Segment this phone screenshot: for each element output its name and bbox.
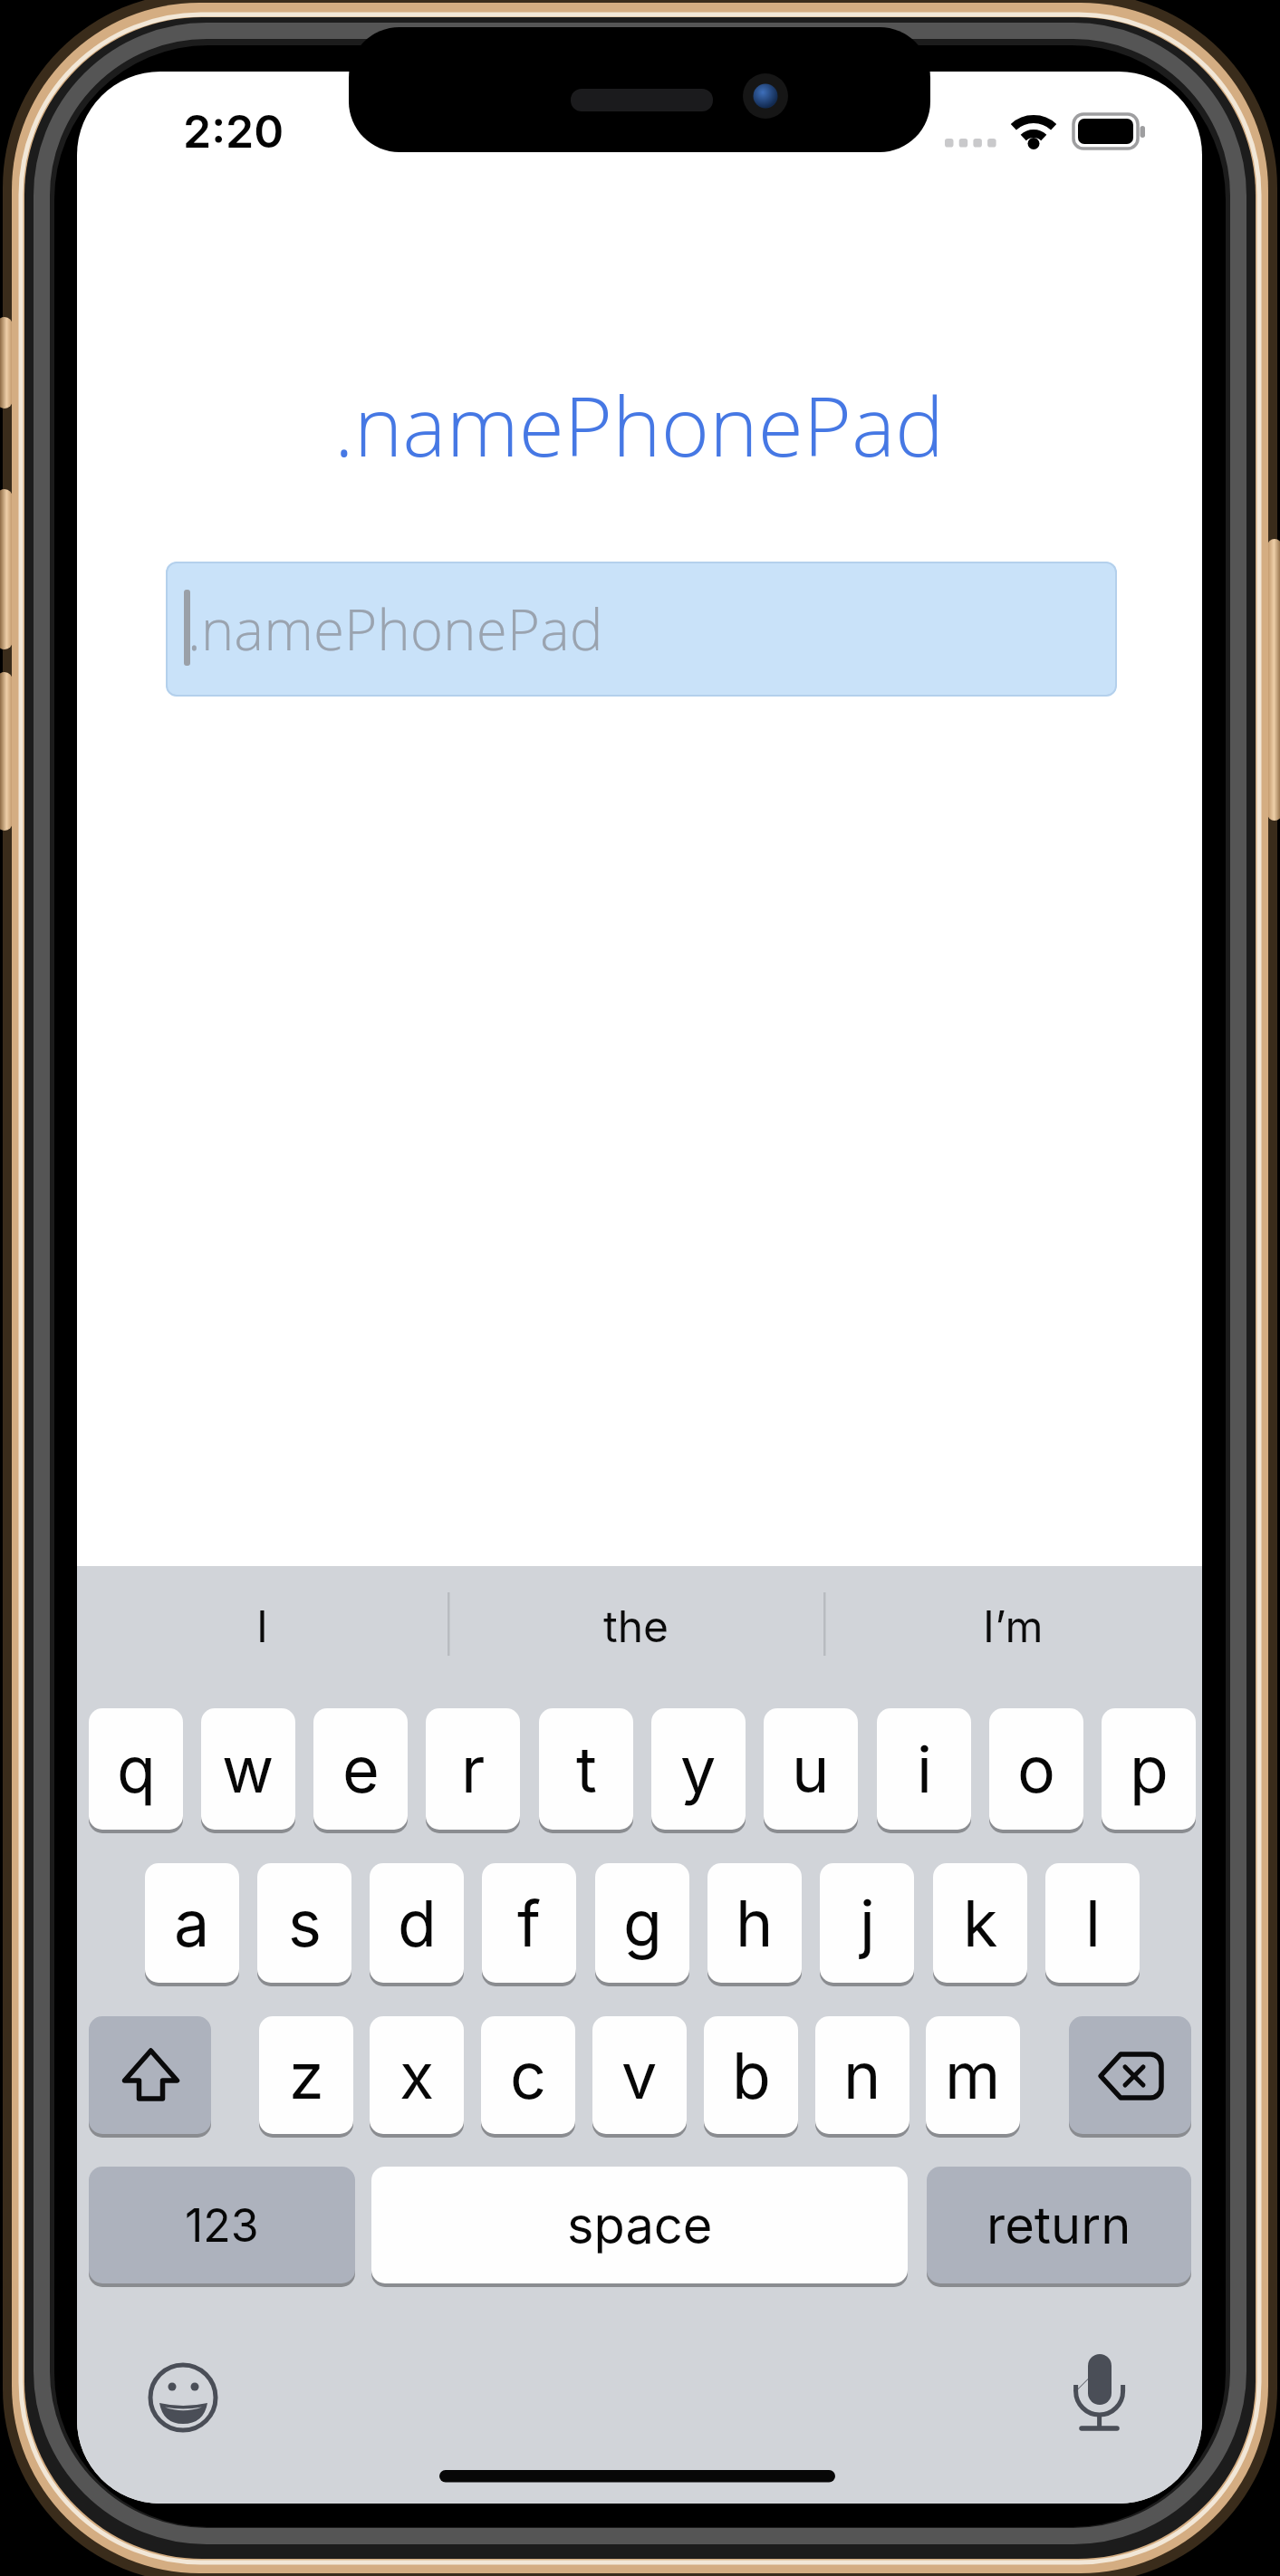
button[interactable]: t (539, 1708, 633, 1830)
staticText: 2:20 (183, 104, 284, 159)
staticText: w (222, 1731, 274, 1808)
staticText: h (736, 1885, 774, 1962)
button[interactable]: return (927, 2167, 1191, 2283)
staticText: .namePhonePad (188, 591, 603, 667)
staticText: p (1130, 1731, 1169, 1808)
button[interactable]: d (370, 1863, 464, 1983)
button[interactable] (145, 2357, 226, 2438)
staticText: a (174, 1885, 210, 1962)
button[interactable]: I’m (824, 1569, 1202, 1683)
staticText: y (680, 1731, 717, 1808)
staticText: return (986, 2195, 1131, 2256)
staticText: j (860, 1885, 875, 1962)
staticText: x (399, 2037, 435, 2114)
staticText: k (963, 1885, 998, 1962)
button[interactable]: v (592, 2016, 687, 2134)
staticText: v (621, 2037, 658, 2114)
staticText: q (117, 1731, 156, 1808)
button[interactable]: i (877, 1708, 971, 1830)
staticText: i (917, 1731, 932, 1808)
staticText: o (1017, 1731, 1055, 1808)
button[interactable]: p (1102, 1708, 1196, 1830)
button[interactable]: m (926, 2016, 1020, 2134)
staticText: the (603, 1600, 669, 1652)
button[interactable]: b (704, 2016, 798, 2134)
button[interactable]: n (815, 2016, 909, 2134)
staticText: 123 (185, 2198, 259, 2253)
button[interactable]: 123 (89, 2167, 355, 2283)
staticText: f (517, 1885, 541, 1962)
button[interactable] (89, 2016, 211, 2134)
button[interactable]: e (313, 1708, 408, 1830)
button[interactable]: space (371, 2167, 908, 2283)
staticText: d (398, 1885, 437, 1962)
staticText: space (567, 2195, 713, 2256)
button[interactable]: o (989, 1708, 1083, 1830)
button[interactable]: u (764, 1708, 858, 1830)
staticText: m (945, 2037, 1001, 2114)
button[interactable]: c (481, 2016, 575, 2134)
staticText: r (461, 1731, 486, 1808)
staticText: I (256, 1600, 268, 1652)
button[interactable]: I (77, 1569, 448, 1683)
button[interactable] (1069, 2016, 1191, 2134)
button[interactable]: q (89, 1708, 183, 1830)
staticText: c (510, 2037, 546, 2114)
button[interactable]: f (482, 1863, 576, 1983)
button[interactable]: g (595, 1863, 689, 1983)
button[interactable]: k (933, 1863, 1027, 1983)
button[interactable]: .namePhonePad (166, 562, 1117, 697)
button[interactable]: a (145, 1863, 239, 1983)
button[interactable]: z (259, 2016, 353, 2134)
staticText: s (288, 1885, 322, 1962)
button[interactable]: x (370, 2016, 464, 2134)
staticText: t (576, 1731, 597, 1808)
staticText: l (1085, 1885, 1101, 1962)
button[interactable] (1058, 2351, 1141, 2438)
staticText: .namePhonePad (334, 369, 945, 481)
staticText: z (289, 2037, 324, 2114)
staticText: I’m (983, 1600, 1044, 1652)
button[interactable]: j (820, 1863, 914, 1983)
button[interactable]: l (1045, 1863, 1140, 1983)
staticText: e (342, 1731, 380, 1808)
staticText: n (843, 2037, 881, 2114)
button[interactable]: h (707, 1863, 802, 1983)
button[interactable]: s (257, 1863, 351, 1983)
button[interactable]: y (651, 1708, 746, 1830)
staticText: u (792, 1731, 830, 1808)
button[interactable]: r (426, 1708, 520, 1830)
button[interactable]: the (448, 1569, 824, 1683)
staticText: b (732, 2037, 771, 2114)
staticText: g (623, 1885, 662, 1962)
button[interactable]: w (201, 1708, 295, 1830)
